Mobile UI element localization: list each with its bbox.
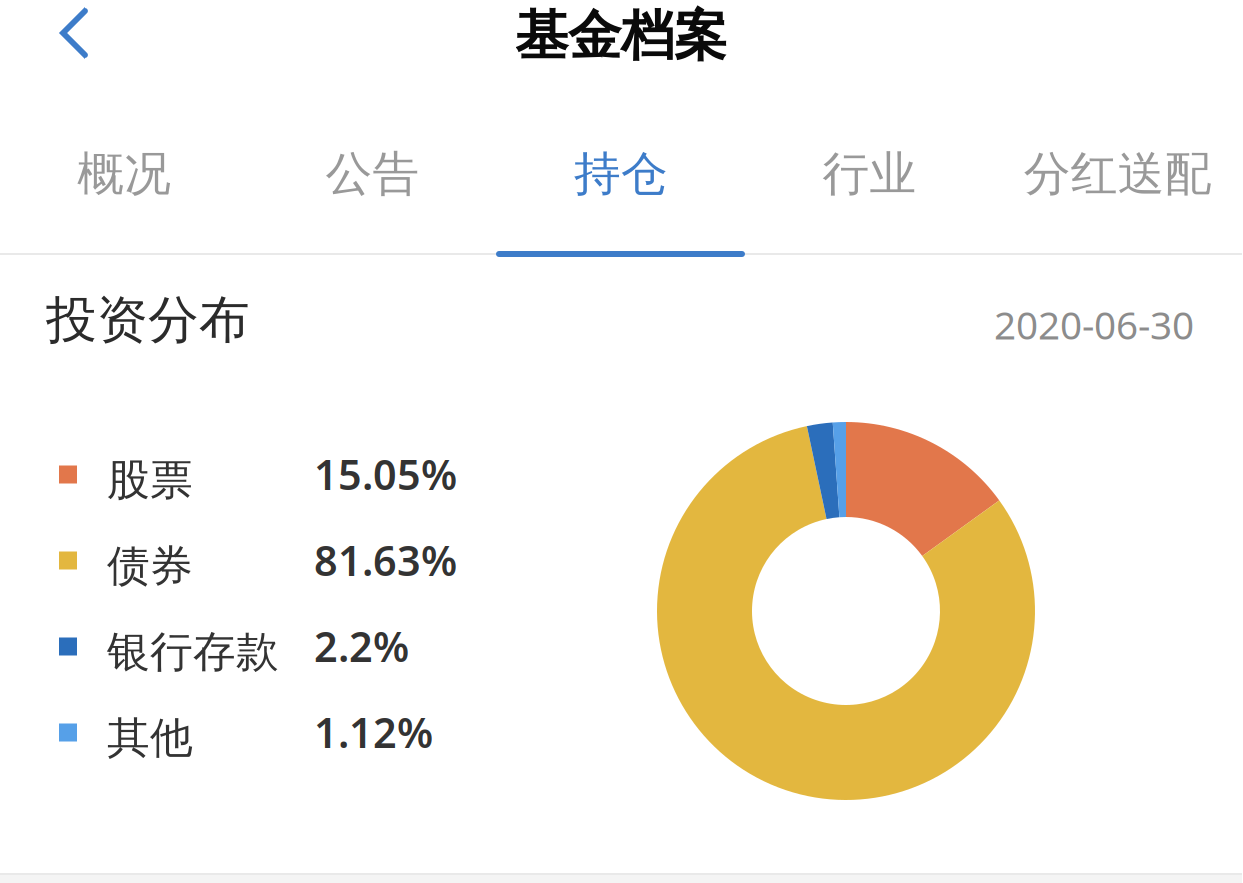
- staticText: 债券: [107, 540, 193, 592]
- staticText: 持仓: [574, 145, 668, 203]
- staticText: 分红送配: [1024, 145, 1212, 203]
- staticText: 投资分布: [46, 289, 250, 351]
- button[interactable]: 公告: [248, 139, 497, 209]
- staticText: 基金档案: [515, 3, 727, 69]
- staticText: 15.05%: [314, 447, 457, 501]
- button[interactable]: 概况: [0, 139, 248, 209]
- staticText: 2020-06-30: [994, 299, 1194, 350]
- staticText: 公告: [326, 145, 420, 203]
- button[interactable]: 分红送配: [994, 139, 1242, 209]
- button[interactable]: 行业: [745, 139, 994, 209]
- staticText: 银行存款: [107, 626, 279, 678]
- button[interactable]: Back: [0, 0, 148, 66]
- staticText: 行业: [822, 145, 916, 203]
- staticText: 81.63%: [314, 533, 457, 587]
- staticText: 2.2%: [314, 619, 409, 673]
- button[interactable]: 持仓: [497, 139, 745, 209]
- staticText: 其他: [107, 712, 193, 764]
- staticText: 股票: [107, 454, 193, 506]
- staticText: 1.12%: [314, 705, 433, 759]
- staticText: 概况: [77, 145, 171, 203]
